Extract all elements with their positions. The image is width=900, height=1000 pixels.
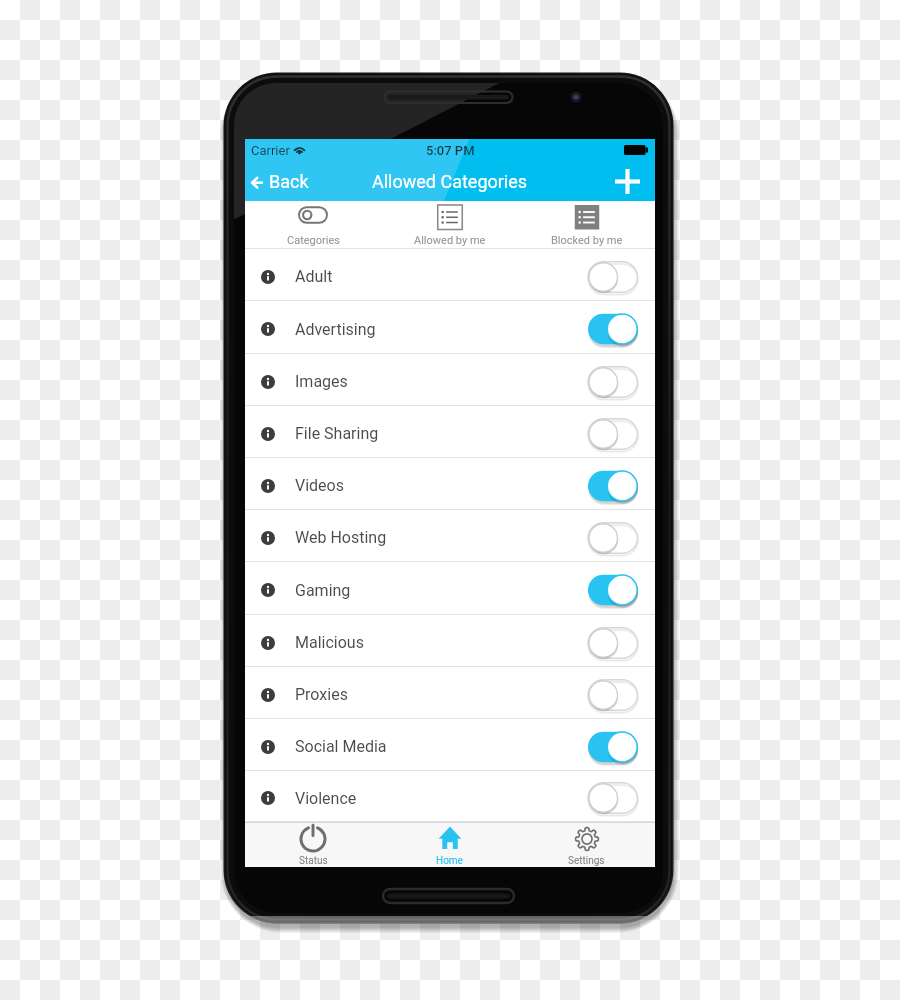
button[interactable]: Switch off: [588, 626, 638, 660]
staticText: Settings: [568, 855, 605, 867]
staticText: Malicious: [295, 633, 364, 652]
staticText: Categories: [287, 234, 340, 247]
staticText: Proxies: [295, 685, 348, 704]
button[interactable]: Status: [245, 823, 381, 867]
button[interactable]: Switch on: [588, 312, 638, 346]
button[interactable]: Categories: [245, 201, 381, 249]
staticText: Back: [269, 171, 309, 192]
staticText: Violence: [295, 789, 357, 808]
button[interactable]: Switch on: [588, 469, 638, 503]
button[interactable]: Switch on: [588, 730, 638, 764]
staticText: Social Media: [295, 737, 387, 756]
staticText: Web Hosting: [295, 528, 387, 547]
button[interactable]: Malicious: [245, 615, 655, 667]
button[interactable]: Images: [245, 354, 655, 406]
button[interactable]: Switch off: [588, 781, 638, 815]
button[interactable]: Settings: [518, 823, 655, 867]
button[interactable]: Blocked by me: [518, 201, 655, 249]
button[interactable]: Gaming: [245, 562, 655, 615]
staticText: Adult: [295, 267, 333, 286]
staticText: Allowed Categories: [372, 171, 528, 192]
staticText: File Sharing: [295, 424, 379, 443]
staticText: Gaming: [295, 581, 351, 600]
button[interactable]: Switch on: [588, 573, 638, 607]
button[interactable]: Back: [245, 161, 319, 201]
button[interactable]: Switch off: [588, 365, 638, 399]
staticText: Advertising: [295, 320, 376, 339]
button[interactable]: Social Media: [245, 719, 655, 771]
button[interactable]: Violence: [245, 771, 655, 822]
staticText: 5:07 PM: [426, 143, 475, 158]
staticText: Carrier: [251, 143, 290, 158]
staticText: Images: [295, 372, 348, 391]
staticText: Allowed by me: [414, 234, 486, 247]
button[interactable]: Switch off: [588, 417, 638, 451]
button[interactable]: Add: [605, 161, 655, 201]
staticText: Status: [299, 855, 328, 867]
button[interactable]: File Sharing: [245, 406, 655, 458]
button[interactable]: Advertising: [245, 301, 655, 354]
button[interactable]: Switch off: [588, 678, 638, 712]
button[interactable]: Switch off: [588, 260, 638, 294]
button[interactable]: Videos: [245, 458, 655, 510]
button[interactable]: Allowed by me: [381, 201, 518, 249]
staticText: Videos: [295, 476, 344, 495]
button[interactable]: Web Hosting: [245, 510, 655, 562]
staticText: Home: [436, 855, 463, 867]
button[interactable]: Home: [381, 823, 518, 867]
button[interactable]: Proxies: [245, 667, 655, 719]
button[interactable]: Switch off: [588, 521, 638, 555]
button[interactable]: Adult: [245, 249, 655, 301]
staticText: Blocked by me: [551, 234, 623, 247]
